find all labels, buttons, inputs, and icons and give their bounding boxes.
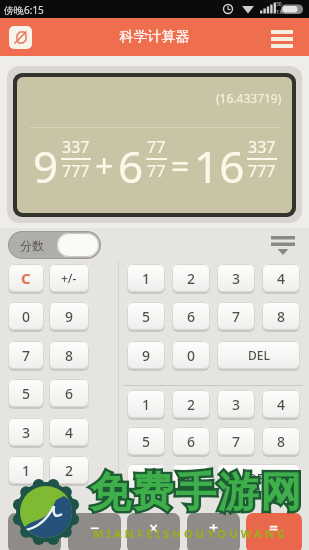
staticText: 9	[65, 307, 74, 326]
staticText: 免费手游网	[90, 467, 303, 519]
button[interactable]: C	[8, 264, 44, 292]
button[interactable]: 7	[217, 427, 255, 455]
staticText: 8	[65, 346, 74, 365]
staticText: +/-	[61, 270, 77, 286]
button[interactable]: 0	[172, 341, 210, 369]
button[interactable]: 1	[127, 390, 165, 418]
button[interactable]: 6	[49, 379, 89, 407]
button[interactable]: 2	[49, 456, 89, 484]
staticText: DEL	[248, 347, 270, 363]
button[interactable]: +	[187, 513, 240, 550]
staticText: ÷	[30, 517, 40, 539]
staticText: 3	[22, 423, 31, 442]
staticText: +	[209, 517, 219, 539]
staticText: 5	[22, 384, 31, 403]
button[interactable]: 8	[262, 427, 300, 455]
staticText: 8	[277, 307, 286, 326]
staticText: 7	[232, 432, 241, 451]
staticText: =	[269, 517, 279, 539]
staticText: 1	[142, 395, 151, 414]
staticText: 77	[147, 160, 166, 182]
staticText: 2	[187, 269, 196, 288]
staticText: 0	[187, 346, 196, 365]
button[interactable]: 分数	[8, 231, 101, 259]
staticText: 6	[187, 307, 196, 326]
button[interactable]: +/-	[49, 264, 89, 292]
button[interactable]: 6	[172, 427, 210, 455]
staticText: MIANFEISHOUYOUWANG	[93, 526, 289, 541]
button[interactable]	[271, 234, 295, 258]
staticText: 337	[248, 136, 276, 158]
button[interactable]: 3	[217, 390, 255, 418]
staticText: 1X	[276, 8, 283, 16]
staticText: 6	[65, 384, 74, 403]
staticText: 8	[277, 432, 286, 451]
staticText: 2	[187, 395, 196, 414]
button[interactable]: 7	[217, 302, 255, 330]
staticText: 9	[142, 346, 151, 365]
staticText: −	[90, 517, 100, 539]
button[interactable]: 7	[8, 341, 44, 369]
staticText: 6	[118, 136, 144, 196]
button[interactable]: 1	[8, 456, 44, 484]
staticText: 9	[33, 136, 59, 196]
staticText: 6	[187, 432, 196, 451]
button[interactable]	[271, 30, 293, 48]
button[interactable]: 6	[172, 302, 210, 330]
staticText: 免费手游网	[90, 467, 303, 519]
button[interactable]: 3	[217, 264, 255, 292]
button[interactable]: ×	[127, 513, 180, 550]
button[interactable]: 1	[127, 264, 165, 292]
button[interactable]	[9, 26, 32, 49]
button[interactable]: DEL	[217, 341, 300, 369]
staticText: DEL	[248, 470, 270, 486]
staticText: 7	[22, 346, 31, 365]
button[interactable]: 8	[262, 302, 300, 330]
button[interactable]: 2	[172, 264, 210, 292]
button[interactable]: 9	[127, 464, 165, 492]
button[interactable]: DEL	[217, 464, 300, 492]
button[interactable]: 0	[172, 464, 210, 492]
staticText: 科学计算器	[0, 28, 309, 46]
button[interactable]: 3	[8, 418, 44, 446]
button[interactable]: −	[68, 513, 121, 550]
staticText: 5	[142, 307, 151, 326]
staticText: 777	[62, 160, 90, 182]
button[interactable]: ÷	[8, 513, 61, 550]
staticText: 5	[142, 432, 151, 451]
staticText: 傍晚6:15	[4, 3, 44, 17]
staticText: 16	[194, 136, 245, 196]
staticText: 4	[277, 395, 286, 414]
staticText: 7	[232, 307, 241, 326]
button[interactable]: 5	[127, 427, 165, 455]
button[interactable]: 5	[8, 379, 44, 407]
button[interactable]: =	[246, 513, 302, 550]
button[interactable]: 9	[127, 341, 165, 369]
staticText: 337	[62, 136, 90, 158]
staticText: 77	[147, 136, 166, 158]
button[interactable]: 2	[172, 390, 210, 418]
staticText: 分数	[20, 238, 44, 253]
staticText: 1	[22, 461, 31, 480]
staticText: 4	[277, 269, 286, 288]
staticText: 0	[22, 307, 31, 326]
button[interactable]: 4	[49, 418, 89, 446]
staticText: C	[21, 268, 31, 288]
staticText: 3	[232, 395, 241, 414]
button[interactable]: 0	[8, 302, 44, 330]
button[interactable]: 4	[262, 390, 300, 418]
staticText: 30	[276, 1, 282, 8]
staticText: 0	[187, 469, 196, 488]
staticText: =	[171, 144, 190, 188]
staticText: 777	[248, 160, 276, 182]
staticText: ×	[149, 517, 159, 539]
button[interactable]: 8	[49, 341, 89, 369]
staticText: (16.433719)	[216, 90, 282, 106]
button[interactable]: 4	[262, 264, 300, 292]
staticText: 4	[65, 423, 74, 442]
staticText: 3	[232, 269, 241, 288]
staticText: 9	[142, 469, 151, 488]
staticText: 2	[65, 461, 74, 480]
button[interactable]: 5	[127, 302, 165, 330]
button[interactable]: 9	[49, 302, 89, 330]
